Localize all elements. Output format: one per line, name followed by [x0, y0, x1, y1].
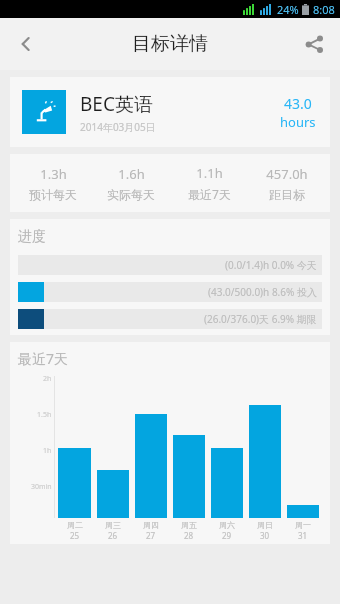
staticText: 最近7天	[18, 349, 69, 368]
staticText: 2014年03月05日	[80, 120, 156, 134]
staticText: 31	[298, 530, 308, 541]
button[interactable]: BEC英语	[10, 77, 330, 147]
button[interactable]: (0.0/1.4)h 0.0% 今天	[18, 255, 322, 275]
button[interactable]: (26.0/376.0)天 6.9% 期限	[18, 309, 322, 329]
staticText: 43.0	[284, 94, 312, 113]
staticText: 周日	[257, 520, 273, 530]
staticText: 周一	[295, 520, 311, 530]
staticText: 29	[222, 530, 232, 541]
staticText: (0.0/1.4)h 0.0% 今天	[225, 258, 317, 272]
staticText: 1.6h	[118, 165, 145, 183]
staticText: 25	[70, 530, 80, 541]
staticText: (43.0/500.0)h 8.6% 投入	[208, 285, 317, 299]
staticText: 28	[184, 530, 194, 541]
staticText: 周六	[219, 520, 235, 530]
button[interactable]: Back	[0, 18, 52, 70]
staticText: 24%	[277, 2, 299, 17]
staticText: 2h	[43, 374, 52, 384]
staticText: 1.1h	[196, 164, 223, 182]
staticText: 进度	[18, 228, 46, 246]
staticText: 周五	[181, 520, 197, 530]
staticText: hours	[280, 113, 316, 131]
staticText: 30min	[31, 482, 52, 492]
staticText: 实际每天	[107, 187, 155, 202]
staticText: 8:08	[313, 2, 335, 17]
staticText: 1.3h	[40, 165, 67, 183]
staticText: 30	[260, 530, 270, 541]
staticText: 1h	[43, 446, 52, 456]
button[interactable]: (43.0/500.0)h 8.6% 投入	[18, 282, 322, 302]
staticText: 距目标	[269, 187, 305, 202]
staticText: 周三	[105, 520, 121, 530]
staticText: 27	[146, 530, 156, 541]
staticText: 457.0h	[266, 165, 308, 183]
staticText: 26	[108, 530, 118, 541]
staticText: 最近7天	[188, 186, 231, 202]
staticText: 预计每天	[29, 187, 77, 202]
staticText: 周四	[143, 520, 159, 530]
staticText: BEC英语	[80, 91, 153, 117]
staticText: 1.5h	[37, 410, 52, 420]
button[interactable]: Share	[288, 18, 340, 70]
staticText: 周二	[67, 520, 83, 530]
staticText: 目标详情	[132, 32, 208, 56]
staticText: (26.0/376.0)天 6.9% 期限	[204, 312, 317, 326]
